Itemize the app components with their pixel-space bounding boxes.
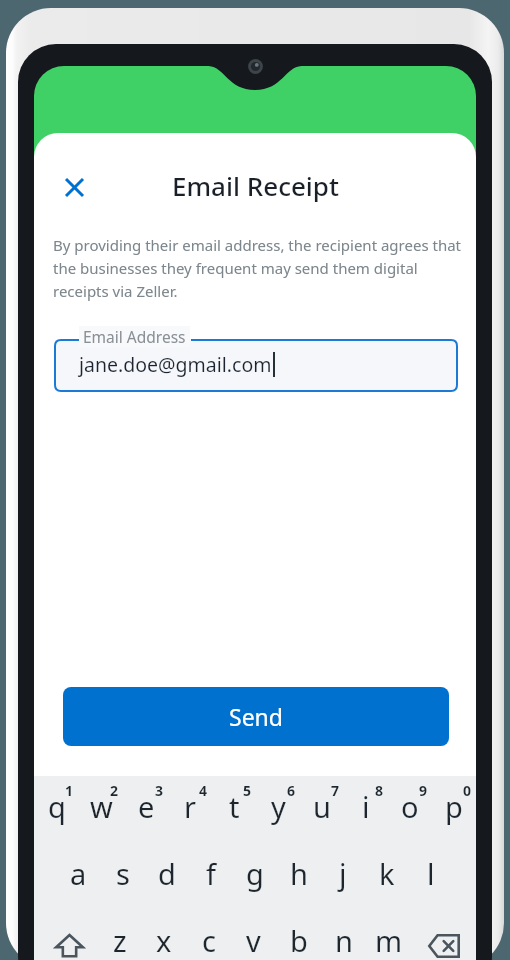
button[interactable]: g	[233, 840, 277, 904]
staticText: j	[339, 854, 347, 893]
staticText: 4	[199, 781, 208, 800]
staticText: 9	[419, 781, 428, 800]
staticText: u	[313, 787, 331, 826]
button[interactable]: b	[276, 904, 321, 960]
staticText: 2	[110, 781, 119, 800]
staticText: e	[138, 787, 155, 826]
staticText: 1	[65, 781, 74, 800]
button[interactable]: m	[366, 904, 411, 960]
staticText: m	[375, 921, 403, 960]
staticText: s	[116, 854, 130, 893]
staticText: v	[246, 921, 261, 960]
staticText: 6	[287, 781, 296, 800]
staticText: t	[229, 787, 240, 826]
staticText: l	[427, 854, 435, 893]
button[interactable]: d	[145, 840, 189, 904]
button[interactable]: 9	[388, 776, 432, 840]
button[interactable]: 5	[212, 776, 256, 840]
staticText: By providing their email address, the re…	[53, 235, 461, 301]
staticText: jane.doe@gmail.com	[79, 351, 272, 378]
staticText: k	[379, 854, 395, 893]
button[interactable]: Close	[50, 163, 98, 211]
staticText: 8	[375, 781, 384, 800]
button[interactable]: j	[321, 840, 365, 904]
button[interactable]: 8	[344, 776, 388, 840]
staticText: f	[206, 854, 216, 893]
button[interactable]: a	[56, 840, 101, 904]
staticText: x	[156, 921, 172, 960]
button[interactable]: 1	[34, 776, 79, 840]
button[interactable]: f	[189, 840, 233, 904]
staticText: w	[90, 787, 113, 826]
staticText: Email Receipt	[172, 168, 339, 203]
staticText: a	[70, 854, 87, 893]
button[interactable]: l	[409, 840, 453, 904]
staticText: n	[335, 921, 353, 960]
staticText: r	[184, 787, 196, 826]
staticText: p	[445, 787, 463, 826]
button[interactable]: c	[186, 904, 231, 960]
button[interactable]: h	[277, 840, 321, 904]
staticText: d	[158, 854, 176, 893]
button[interactable]: x	[142, 904, 186, 960]
button[interactable]: 7	[300, 776, 344, 840]
staticText: g	[246, 854, 264, 893]
staticText: b	[290, 921, 308, 960]
button[interactable]: 6	[256, 776, 300, 840]
staticText: o	[401, 787, 419, 826]
staticText: y	[271, 787, 286, 826]
button[interactable]: 0	[432, 776, 476, 840]
staticText: Email Address	[83, 326, 186, 347]
staticText: h	[290, 854, 308, 893]
staticText: c	[202, 921, 216, 960]
staticText: 5	[243, 781, 252, 800]
button[interactable]: z	[98, 904, 142, 960]
staticText: 0	[463, 781, 472, 800]
button[interactable]: s	[101, 840, 145, 904]
staticText: Send	[229, 701, 283, 732]
button[interactable]: Shift	[34, 904, 98, 960]
button[interactable]: 2	[79, 776, 124, 840]
staticText: i	[362, 787, 370, 826]
staticText: q	[48, 787, 66, 826]
button[interactable]: Send	[63, 687, 449, 746]
staticText: z	[113, 921, 127, 960]
button[interactable]: n	[321, 904, 366, 960]
button[interactable]: v	[231, 904, 276, 960]
staticText: 7	[331, 781, 340, 800]
button[interactable]: 3	[124, 776, 168, 840]
button[interactable]: Backspace	[411, 904, 476, 960]
staticText: 3	[155, 781, 164, 800]
button[interactable]: 4	[168, 776, 212, 840]
button[interactable]: k	[365, 840, 409, 904]
